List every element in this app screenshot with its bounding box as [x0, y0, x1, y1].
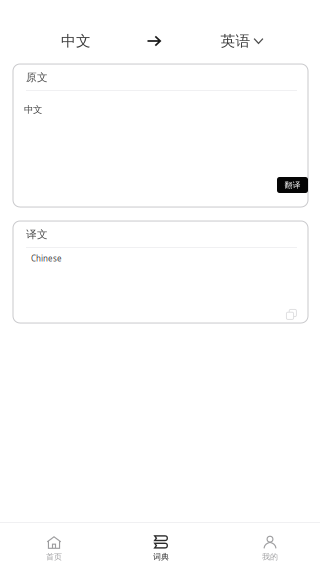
button[interactable]: 首页: [1, 536, 107, 566]
button[interactable]: 英语: [205, 27, 279, 55]
staticText: 翻译: [284, 180, 300, 190]
button[interactable]: Swap languages: [137, 27, 171, 55]
staticText: 我的: [262, 552, 278, 562]
button[interactable]: 翻译: [277, 177, 308, 193]
staticText: 英语: [220, 32, 250, 50]
staticText: 首页: [46, 552, 62, 562]
button[interactable]: 我的: [217, 536, 320, 566]
button[interactable]: 词典: [108, 535, 214, 566]
staticText: 中文: [61, 32, 91, 50]
staticText: 原文: [26, 71, 48, 84]
staticText: Chinese: [31, 253, 62, 264]
button[interactable]: 中文: [39, 27, 113, 55]
staticText: 词典: [153, 552, 169, 562]
staticText: 译文: [26, 228, 48, 241]
button[interactable]: Copy translation: [282, 305, 298, 321]
staticText: 中文: [24, 104, 42, 115]
